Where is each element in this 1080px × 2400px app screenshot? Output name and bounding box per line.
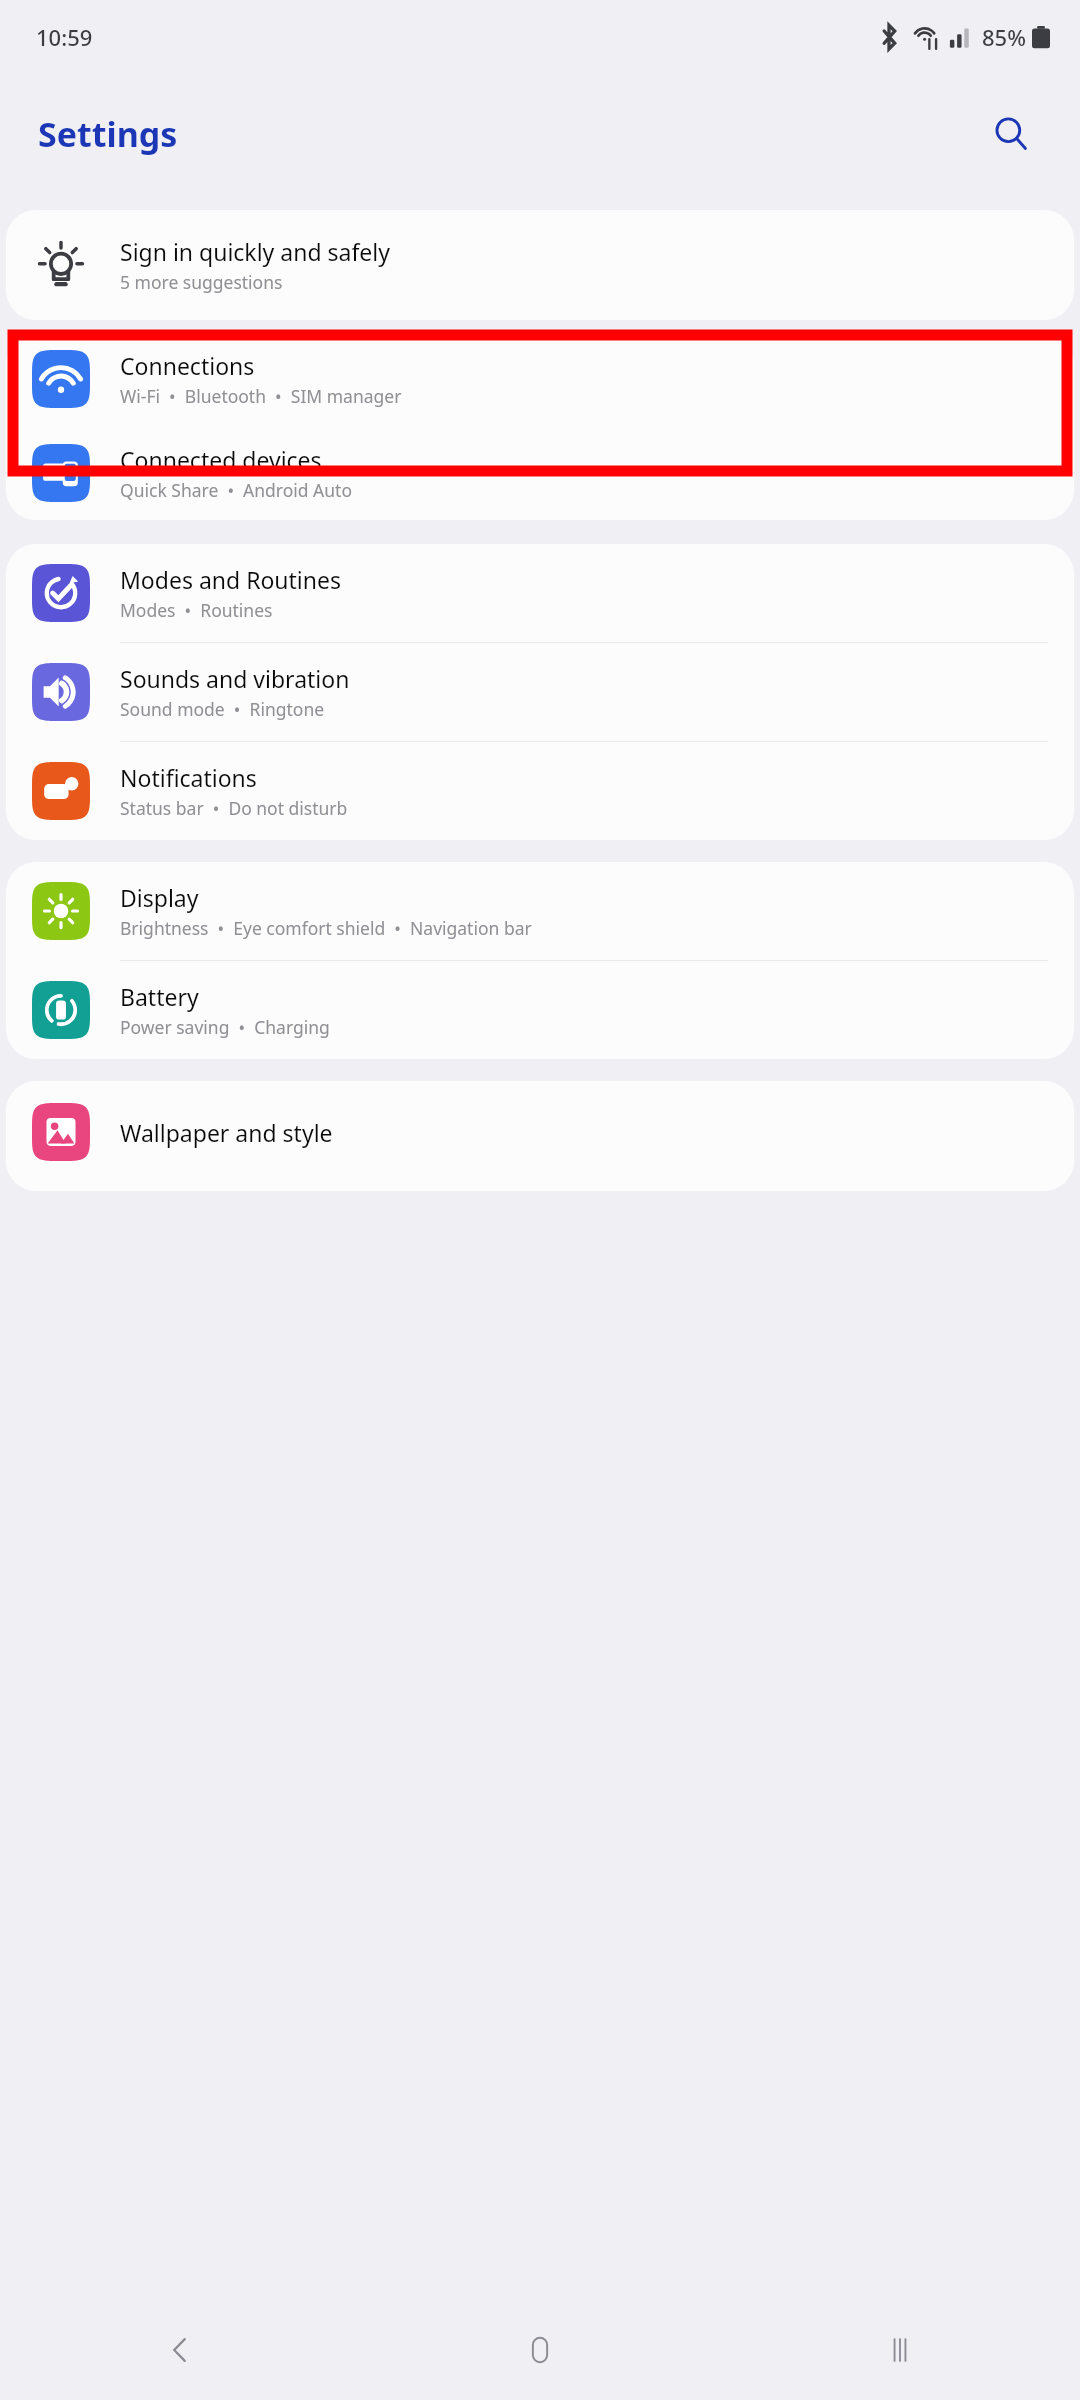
staticText: Quick Share • Android Auto (120, 478, 353, 502)
staticText: Settings (38, 111, 178, 157)
button[interactable]: Connections (6, 332, 1074, 426)
button[interactable]: Notifications (6, 742, 1074, 840)
staticText: Sign in quickly and safely (120, 236, 390, 267)
staticText: Battery (120, 981, 199, 1012)
staticText: 5 more suggestions (120, 270, 283, 294)
button[interactable]: Search (982, 105, 1040, 163)
staticText: Wallpaper and style (120, 1117, 333, 1148)
staticText: Sounds and vibration (120, 663, 350, 694)
staticText: Connected devices (120, 444, 322, 475)
button[interactable]: Connected devices (6, 426, 1074, 520)
button[interactable]: Battery (6, 961, 1074, 1059)
staticText: Modes • Routines (120, 598, 273, 622)
button[interactable]: Home (360, 2300, 720, 2400)
staticText: Modes and Routines (120, 564, 342, 595)
staticText: 85% (982, 22, 1026, 52)
staticText: Display (120, 882, 199, 913)
staticText: Status bar • Do not disturb (120, 796, 348, 820)
staticText: Connections (120, 350, 255, 381)
staticText: Sound mode • Ringtone (120, 697, 325, 721)
staticText: Wi-Fi • Bluetooth • SIM manager (120, 384, 402, 408)
button[interactable]: Wallpaper and style (6, 1081, 1074, 1191)
staticText: Notifications (120, 762, 257, 793)
staticText: 10:59 (36, 22, 93, 52)
button[interactable]: Recent apps (720, 2300, 1080, 2400)
button[interactable]: Modes and Routines (6, 544, 1074, 642)
staticText: Power saving • Charging (120, 1015, 330, 1039)
staticText: Brightness • Eye comfort shield • Naviga… (120, 916, 532, 940)
button[interactable]: Display (6, 862, 1074, 960)
button[interactable]: Sign in quickly and safely (6, 210, 1074, 320)
button[interactable]: Back (0, 2300, 360, 2400)
button[interactable]: Sounds and vibration (6, 643, 1074, 741)
